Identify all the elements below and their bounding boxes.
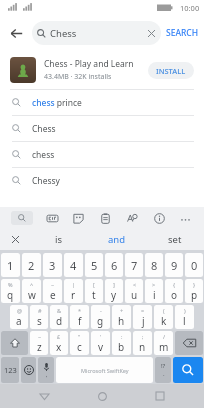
staticText: x: [56, 340, 62, 354]
staticText: }: [193, 281, 196, 288]
button[interactable]: !?: [155, 357, 171, 383]
button[interactable]: ': [91, 331, 110, 355]
button[interactable]: Clear: [141, 23, 161, 43]
button[interactable]: ": [70, 331, 89, 355]
button[interactable]: Back: [0, 17, 32, 49]
staticText: Chess: [32, 123, 56, 135]
staticText: :: [121, 333, 123, 340]
button[interactable]: Translate: [124, 210, 140, 226]
button[interactable]: Chess: [0, 116, 204, 141]
button[interactable]: Backspace: [175, 331, 203, 355]
button[interactable]: 123: [1, 357, 19, 383]
button[interactable]: /: [154, 331, 173, 355]
button[interactable]: set: [146, 228, 204, 250]
staticText: o: [171, 288, 178, 302]
button[interactable]: Stickers: [70, 210, 86, 226]
staticText: 6: [111, 258, 118, 273]
button[interactable]: >: [145, 279, 163, 303]
button[interactable]: 3: [43, 253, 62, 277]
staticText: [: [93, 281, 95, 288]
button[interactable]: Search: [173, 357, 203, 383]
staticText: z: [37, 340, 42, 354]
button[interactable]: -: [91, 305, 110, 329]
staticText: s: [37, 314, 42, 328]
button[interactable]: Info: [151, 210, 167, 226]
button[interactable]: }: [185, 279, 203, 303]
button[interactable]: |: [64, 279, 83, 303]
button[interactable]: ]: [105, 279, 123, 303]
staticText: j: [142, 314, 145, 328]
button[interactable]: Chess - Play and Learn: [0, 51, 204, 89]
button[interactable]: <: [125, 279, 143, 303]
staticText: 5: [91, 258, 98, 273]
staticText: INSTALL: [156, 66, 186, 76]
button[interactable]: &: [50, 305, 68, 329]
staticText: |: [72, 281, 76, 288]
button[interactable]: 9: [165, 253, 183, 277]
button[interactable]: and: [88, 228, 146, 250]
button[interactable]: %: [1, 279, 20, 303]
button[interactable]: 5: [85, 253, 103, 277]
staticText: ;: [142, 333, 144, 340]
button[interactable]: Shift: [1, 331, 28, 355]
button[interactable]: Back: [30, 384, 58, 408]
staticText: &: [57, 307, 62, 314]
staticText: =: [141, 307, 145, 314]
button[interactable]: *: [70, 305, 89, 329]
button[interactable]: 2: [22, 253, 41, 277]
staticText: ,: [46, 371, 48, 378]
staticText: 10:00: [180, 3, 200, 13]
button[interactable]: ~: [30, 331, 48, 355]
button[interactable]: 4: [64, 253, 83, 277]
button[interactable]: @: [10, 305, 28, 329]
staticText: chess prince: [32, 97, 82, 109]
button[interactable]: ~: [43, 279, 62, 303]
button[interactable]: ): [175, 305, 194, 329]
button[interactable]: chess prince: [0, 90, 204, 115]
staticText: ^: [30, 281, 34, 288]
button[interactable]: 7: [125, 253, 143, 277]
button[interactable]: #: [30, 305, 48, 329]
button[interactable]: ^: [22, 279, 41, 303]
button[interactable]: 8: [145, 253, 163, 277]
button[interactable]: 6: [105, 253, 123, 277]
button[interactable]: Chess: [32, 21, 161, 45]
staticText: /: [163, 333, 166, 340]
button[interactable]: Recents: [146, 384, 174, 408]
button[interactable]: Home: [88, 384, 116, 408]
button[interactable]: Chessy: [0, 168, 204, 193]
staticText: r: [71, 288, 76, 302]
button[interactable]: Clipboard: [97, 210, 113, 226]
button[interactable]: Emoji: [21, 357, 36, 383]
button[interactable]: {: [165, 279, 183, 303]
button[interactable]: chess: [0, 142, 204, 167]
staticText: t: [92, 288, 96, 302]
button[interactable]: (: [154, 305, 173, 329]
staticText: >: [152, 281, 156, 288]
staticText: !?: [161, 362, 166, 370]
button[interactable]: £: [50, 331, 68, 355]
button[interactable]: 1: [1, 253, 20, 277]
button[interactable]: Microsoft SwiftKey: [56, 357, 153, 383]
button[interactable]: is: [30, 228, 88, 250]
staticText: SEARCH: [166, 27, 199, 39]
button[interactable]: SEARCH: [166, 27, 199, 39]
staticText: Chess: [50, 27, 141, 40]
button[interactable]: More: [177, 210, 193, 226]
button[interactable]: GIF: [44, 210, 60, 226]
button[interactable]: :: [112, 331, 131, 355]
button[interactable]: ;: [133, 331, 152, 355]
staticText: w: [28, 288, 36, 302]
button[interactable]: +: [112, 305, 131, 329]
staticText: -: [100, 307, 102, 314]
button[interactable]: Search: [11, 211, 33, 225]
button[interactable]: Voice input: [38, 357, 54, 383]
button[interactable]: INSTALL: [148, 62, 194, 79]
button[interactable]: =: [133, 305, 152, 329]
button[interactable]: [: [85, 279, 103, 303]
staticText: f: [78, 314, 82, 328]
staticText: 8: [151, 258, 158, 273]
button[interactable]: Close suggestions: [0, 228, 30, 250]
button[interactable]: 0: [185, 253, 203, 277]
staticText: 2: [28, 258, 35, 273]
